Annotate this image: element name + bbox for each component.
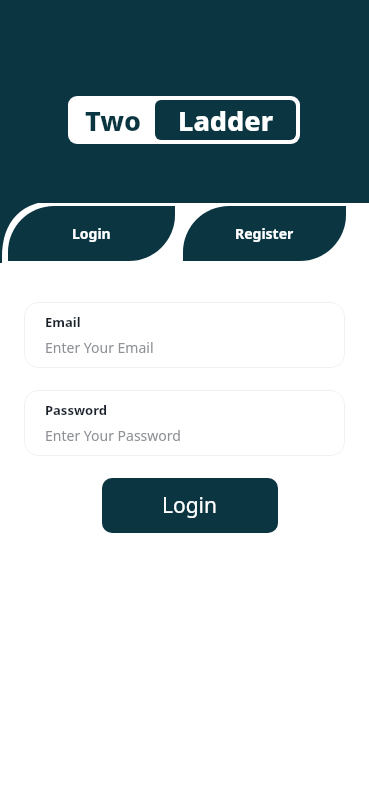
button[interactable]: Login	[8, 206, 175, 261]
staticText: Enter Your Email	[45, 338, 154, 357]
staticText: Password	[45, 401, 107, 419]
staticText: Login	[72, 224, 111, 243]
staticText: Enter Your Password	[45, 426, 181, 445]
button[interactable]: Register	[183, 206, 346, 261]
button[interactable]: Login	[102, 478, 278, 533]
staticText: Ladder	[178, 102, 273, 139]
staticText: Login	[162, 491, 218, 520]
staticText: Two	[85, 102, 142, 139]
staticText: Register	[235, 224, 294, 243]
staticText: Email	[45, 313, 81, 331]
button[interactable]: Email	[24, 302, 345, 368]
button[interactable]: Password	[24, 390, 345, 456]
